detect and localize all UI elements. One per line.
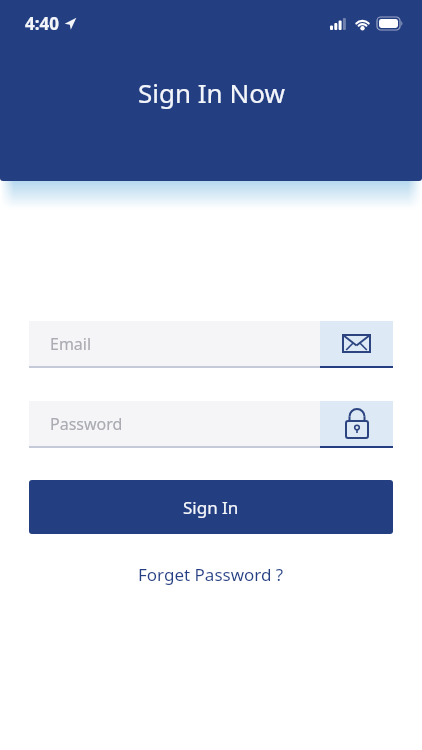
button[interactable]: Password bbox=[29, 401, 393, 448]
staticText: Password bbox=[50, 413, 123, 435]
staticText: Email bbox=[50, 333, 92, 355]
button[interactable]: Sign In bbox=[29, 480, 393, 534]
staticText: 4:40 bbox=[25, 12, 59, 35]
staticText: Sign In bbox=[183, 496, 239, 519]
button[interactable]: Email bbox=[29, 321, 393, 368]
staticText: Sign In Now bbox=[138, 75, 285, 110]
staticText: Forget Password ? bbox=[138, 563, 284, 586]
button[interactable]: Forget Password ? bbox=[130, 561, 292, 588]
